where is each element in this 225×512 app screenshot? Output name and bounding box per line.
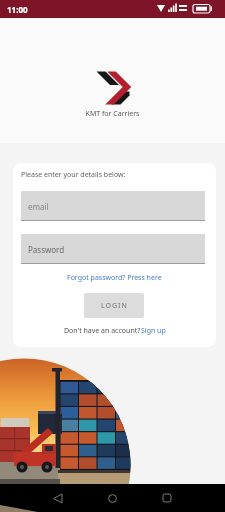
button[interactable]	[155, 484, 179, 512]
button[interactable]: email	[21, 191, 205, 221]
button[interactable]	[100, 484, 124, 512]
button[interactable]: Sign up	[141, 326, 166, 336]
staticText: Password	[28, 244, 65, 255]
button[interactable]: Forgot password? Press here	[67, 273, 162, 283]
button[interactable]	[45, 484, 69, 512]
button[interactable]: Password	[21, 234, 205, 264]
staticText: email	[28, 201, 49, 212]
staticText: 11:00	[7, 4, 28, 15]
staticText: KMT for Carriers	[0, 109, 225, 119]
staticText: Please enter your details below:	[21, 170, 126, 180]
staticText: Don't have an account?	[64, 326, 141, 336]
button[interactable]: LOGIN	[84, 293, 144, 318]
staticText: LOGIN	[101, 301, 128, 311]
